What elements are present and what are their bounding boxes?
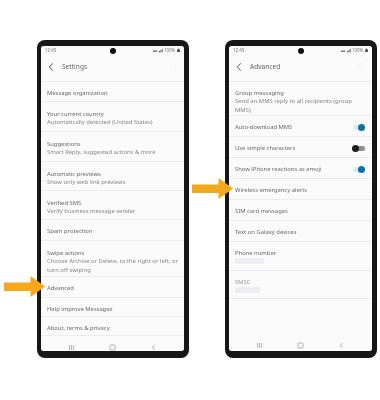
staticText: Settings bbox=[62, 62, 88, 71]
button[interactable]: Home bbox=[106, 341, 118, 351]
staticText: Show iPhone reactions as emoji bbox=[235, 165, 322, 173]
staticText: Phone number bbox=[235, 249, 277, 257]
button[interactable]: Suggestions bbox=[41, 132, 184, 162]
staticText: SMSC bbox=[235, 278, 251, 286]
button[interactable]: Advanced bbox=[41, 277, 184, 298]
button[interactable]: Help improve Messages bbox=[41, 298, 184, 317]
staticText: Message organization bbox=[47, 89, 108, 97]
staticText: Automatically detected (United States) bbox=[47, 118, 180, 126]
button[interactable]: Verified SMS bbox=[41, 191, 184, 220]
staticText: Show only web link previews bbox=[47, 178, 180, 186]
staticText: Advanced bbox=[47, 284, 74, 292]
button[interactable]: Your current country bbox=[41, 102, 184, 132]
button[interactable]: Show iPhone reactions as emoji bbox=[229, 158, 372, 179]
staticText: 100% bbox=[352, 47, 364, 53]
button[interactable]: Phone number bbox=[229, 242, 372, 271]
button[interactable]: Spam protection bbox=[41, 220, 184, 241]
staticText: Swipe actions bbox=[47, 249, 85, 257]
staticText: About, terms & privacy bbox=[47, 324, 110, 332]
staticText: 100% bbox=[164, 47, 176, 53]
button[interactable]: Home bbox=[294, 339, 306, 351]
button[interactable]: Recent apps bbox=[253, 339, 265, 351]
button[interactable]: Text on Galaxy devices bbox=[229, 221, 372, 242]
button[interactable]: Auto-download MMS bbox=[229, 116, 372, 137]
staticText: Your current country bbox=[47, 110, 104, 118]
staticText: Verified SMS bbox=[47, 199, 82, 207]
staticText: Wireless emergency alerts bbox=[235, 186, 308, 194]
button[interactable]: Message organization bbox=[41, 82, 184, 102]
staticText: Verify business message sender bbox=[47, 207, 180, 215]
staticText: Automatic previews bbox=[47, 170, 101, 178]
button[interactable]: About, terms & privacy bbox=[41, 317, 184, 336]
staticText: Choose Archive or Delete, to the right o… bbox=[47, 257, 180, 274]
button[interactable]: Group messaging bbox=[229, 82, 372, 116]
button[interactable]: Use simple characters bbox=[229, 137, 372, 158]
button[interactable]: SIM card messages bbox=[229, 200, 372, 221]
staticText: Suggestions bbox=[47, 140, 81, 148]
staticText: Use simple characters bbox=[235, 144, 296, 152]
button[interactable]: Back bbox=[44, 60, 57, 73]
staticText: Help improve Messages bbox=[47, 305, 113, 313]
staticText: Group messaging bbox=[235, 89, 284, 97]
staticText: Spam protection bbox=[47, 227, 93, 235]
staticText: Text on Galaxy devices bbox=[235, 228, 297, 236]
staticText: 12:45 bbox=[45, 47, 57, 53]
staticText: SIM card messages bbox=[235, 207, 288, 215]
staticText: Auto-download MMS bbox=[235, 123, 293, 131]
staticText: Smart Reply, suggested actions & more bbox=[47, 148, 180, 156]
button[interactable]: Automatic previews bbox=[41, 162, 184, 191]
button[interactable]: Recent apps bbox=[65, 341, 77, 351]
button[interactable]: Back bbox=[232, 60, 245, 73]
button[interactable]: Swipe actions bbox=[41, 241, 184, 277]
staticText: Send an MMS reply to all recipients (gro… bbox=[235, 97, 368, 114]
button[interactable]: Back bbox=[335, 339, 347, 351]
button[interactable]: Wireless emergency alerts bbox=[229, 179, 372, 200]
staticText: 12:45 bbox=[233, 47, 245, 53]
button[interactable]: Back bbox=[147, 341, 159, 351]
staticText: Advanced bbox=[250, 62, 281, 71]
button[interactable]: SMSC bbox=[229, 271, 372, 299]
